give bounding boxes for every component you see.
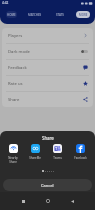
staticText: Nearby Share <box>8 156 18 163</box>
button[interactable]: Dark mode <box>2 44 93 59</box>
button[interactable]: Dark mode toggle <box>81 50 88 53</box>
staticText: Cancel <box>41 183 54 188</box>
staticText: Players <box>8 33 23 39</box>
button[interactable]: Share <box>2 92 93 107</box>
button[interactable]: Back <box>67 196 77 206</box>
staticText: Dark mode <box>8 49 30 55</box>
staticText: Teams <box>53 156 62 160</box>
button[interactable]: Facebook <box>69 144 92 160</box>
staticText: ShareMe <box>29 156 41 160</box>
staticText: 4:42 <box>2 1 9 5</box>
staticText: MATCHES <box>28 13 42 17</box>
button[interactable]: Feedback <box>2 60 93 75</box>
button[interactable]: MORE <box>76 11 90 18</box>
button[interactable]: Cancel <box>3 179 92 191</box>
button[interactable]: MATCHES <box>28 11 42 18</box>
staticText: Share <box>42 135 54 141</box>
staticText: HOME <box>7 13 16 17</box>
button[interactable]: HOME <box>6 11 17 18</box>
button[interactable]: Teams <box>46 144 69 160</box>
button[interactable]: ShareMe <box>24 144 46 160</box>
staticText: Rate us <box>8 81 23 87</box>
staticText: STATS <box>56 13 64 17</box>
button[interactable]: Nearby Share <box>2 144 24 163</box>
staticText: Feedback <box>8 65 27 71</box>
staticText: MORE <box>79 13 88 17</box>
staticText: Facebook <box>74 156 87 160</box>
staticText: Share <box>8 97 20 103</box>
button[interactable]: Players <box>2 28 93 43</box>
button[interactable]: Recents <box>18 196 28 206</box>
button[interactable]: Home <box>43 196 53 206</box>
button[interactable]: Rate us <box>2 76 93 91</box>
button[interactable]: STATS <box>53 11 66 18</box>
